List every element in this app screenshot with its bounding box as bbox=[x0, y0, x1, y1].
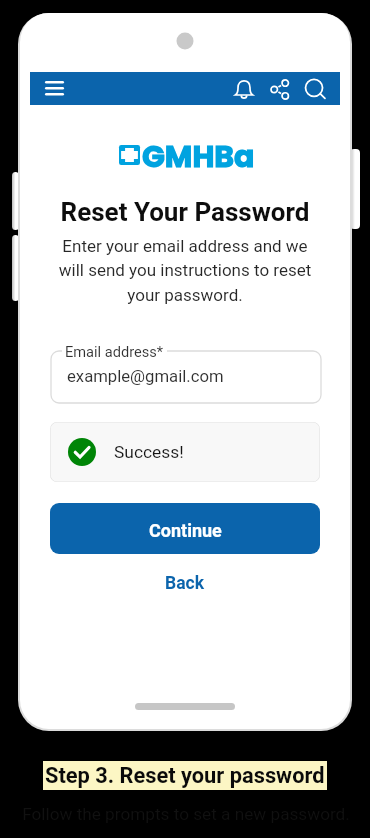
staticText: Reset Your Password bbox=[18, 197, 352, 227]
button[interactable]: Search bbox=[300, 74, 330, 104]
staticText: Back bbox=[165, 573, 205, 594]
button[interactable]: Notifications bbox=[229, 74, 259, 104]
button[interactable]: Back bbox=[18, 568, 352, 598]
staticText: Success! bbox=[114, 442, 184, 462]
staticText: Continue bbox=[149, 520, 222, 541]
staticText: Enter your email address and we will sen… bbox=[58, 236, 312, 306]
staticText: Step 3. Reset your password bbox=[45, 763, 325, 789]
staticText: GMHBa bbox=[142, 136, 255, 178]
staticText: Follow the prompts to set a new password… bbox=[1, 804, 370, 824]
staticText: Email address* bbox=[65, 343, 164, 360]
button[interactable]: example@gmail.com bbox=[51, 351, 321, 403]
staticText: example@gmail.com bbox=[67, 367, 224, 387]
button[interactable]: Open navigation menu bbox=[39, 76, 70, 101]
button[interactable]: Share bbox=[265, 74, 295, 104]
button[interactable]: Continue bbox=[50, 503, 320, 554]
